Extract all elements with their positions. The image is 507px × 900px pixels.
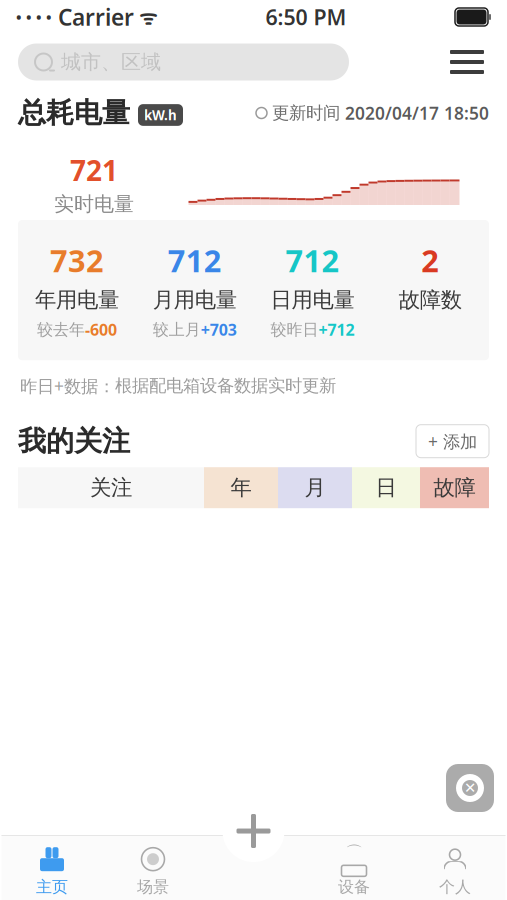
- button[interactable]: 菜单: [441, 41, 493, 83]
- staticText: kW.h: [144, 106, 177, 124]
- button[interactable]: 搜索城市、区域: [18, 43, 349, 80]
- button[interactable]: 场景: [102, 845, 203, 897]
- button[interactable]: 日: [352, 467, 420, 508]
- staticText: 日用电量: [270, 287, 354, 313]
- staticText: 故障数: [399, 287, 462, 313]
- staticText: • • • •: [16, 7, 52, 27]
- staticText: 712: [285, 240, 339, 281]
- staticText: +703: [201, 319, 237, 340]
- staticText: ⌒: [345, 842, 362, 863]
- button[interactable]: 添加: [222, 800, 284, 862]
- staticText: 日: [375, 475, 396, 501]
- staticText: 实时电量: [54, 192, 134, 216]
- staticText: 月用电量: [153, 287, 237, 313]
- staticText: +712: [318, 319, 354, 340]
- staticText: 场景: [137, 877, 169, 897]
- button[interactable]: 设置: [446, 764, 494, 812]
- staticText: 年用电量: [35, 287, 119, 313]
- staticText: 年: [230, 475, 251, 501]
- staticText: 2020/04/17 18:50: [345, 101, 489, 124]
- staticText: 昨日+数据：: [20, 374, 115, 397]
- staticText: 721: [70, 152, 118, 189]
- button[interactable]: 主页: [1, 845, 102, 897]
- button[interactable]: 故障: [420, 467, 489, 508]
- staticText: 主页: [36, 877, 68, 897]
- staticText: 设备: [338, 877, 370, 897]
- staticText: 个人: [439, 877, 471, 897]
- button[interactable]: 年: [204, 467, 278, 508]
- staticText: 较昨日: [270, 320, 318, 339]
- button[interactable]: + 添加: [416, 425, 489, 458]
- staticText: 较去年: [37, 320, 85, 339]
- staticText: Carrier: [52, 2, 134, 32]
- button[interactable]: 月: [278, 467, 352, 508]
- button[interactable]: ⌒: [303, 845, 404, 897]
- staticText: 712: [168, 240, 222, 281]
- staticText: 月: [304, 475, 325, 501]
- staticText: 较上月: [153, 320, 201, 339]
- staticText: 故障: [433, 475, 475, 501]
- staticText: + 添加: [428, 430, 477, 453]
- staticText: 更新时间: [272, 102, 340, 124]
- staticText: 2: [421, 240, 439, 281]
- button[interactable]: 关注: [18, 467, 204, 508]
- staticText: 关注: [90, 475, 132, 501]
- staticText: 城市、区域: [61, 50, 161, 74]
- staticText: 总耗电量: [18, 96, 130, 130]
- staticText: ᯤ: [134, 4, 157, 30]
- button[interactable]: 个人: [404, 845, 505, 897]
- staticText: 732: [50, 240, 104, 281]
- staticText: 6:50 PM: [265, 3, 346, 31]
- staticText: -600: [85, 319, 117, 340]
- staticText: ✕: [464, 780, 476, 796]
- staticText: 我的关注: [18, 424, 130, 458]
- staticText: 根据配电箱设备数据实时更新: [115, 375, 336, 396]
